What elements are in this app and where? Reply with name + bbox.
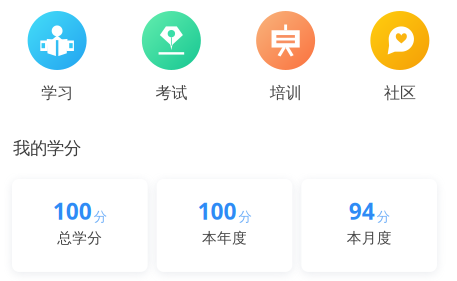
staticText: 社区 [384, 83, 416, 103]
staticText: 分 [377, 209, 390, 225]
button[interactable]: 培训 [228, 11, 343, 103]
staticText: 本月度 [347, 229, 392, 247]
button[interactable]: 考试 [114, 11, 228, 103]
button[interactable]: 100 [157, 179, 292, 272]
staticText: 分 [94, 209, 107, 225]
staticText: 考试 [155, 83, 187, 103]
staticText: 94 [349, 196, 375, 226]
staticText: 本年度 [202, 229, 247, 247]
staticText: 100 [197, 196, 236, 226]
staticText: 我的学分 [13, 138, 81, 159]
staticText: 分 [238, 209, 251, 225]
button[interactable]: 100 [12, 179, 148, 272]
button[interactable]: 学习 [0, 11, 114, 103]
staticText: 总学分 [57, 229, 102, 247]
button[interactable]: 社区 [343, 11, 457, 103]
button[interactable]: 94 [301, 179, 437, 272]
staticText: 100 [53, 196, 92, 226]
staticText: 培训 [270, 83, 302, 103]
staticText: 学习 [41, 83, 73, 103]
